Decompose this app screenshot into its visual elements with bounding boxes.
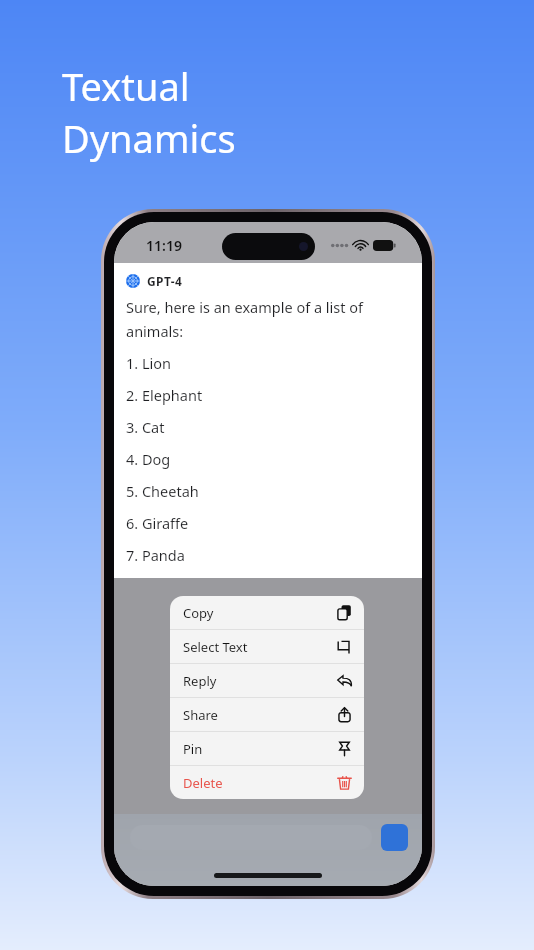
staticText: Textual [62,60,190,112]
staticText: 1. Lion [126,353,172,373]
button[interactable]: Share [170,698,364,731]
button[interactable]: Pin [170,732,364,765]
staticText: 6. Giraffe [126,513,189,533]
staticText: Sure, here is an example of a list of an… [126,297,410,341]
staticText: Copy [183,604,214,622]
button[interactable]: Copy [170,596,364,629]
staticText: 4. Dog [126,449,171,469]
staticText: Dynamics [62,112,236,164]
staticText: 3. Cat [126,417,165,437]
button[interactable]: Select Text [170,630,364,663]
staticText: Pin [183,740,203,758]
staticText: Delete [183,774,223,792]
staticText: GPT-4 [147,273,183,289]
staticText: 5. Cheetah [126,481,199,501]
button[interactable]: Reply [170,664,364,697]
staticText: Select Text [183,638,248,656]
staticText: 2. Elephant [126,385,203,405]
staticText: Reply [183,672,217,690]
staticText: 11:19 [146,236,182,255]
staticText: Share [183,706,218,724]
button[interactable]: Send [381,824,408,851]
button[interactable]: Delete [170,766,364,799]
staticText: 7. Panda [126,545,185,565]
